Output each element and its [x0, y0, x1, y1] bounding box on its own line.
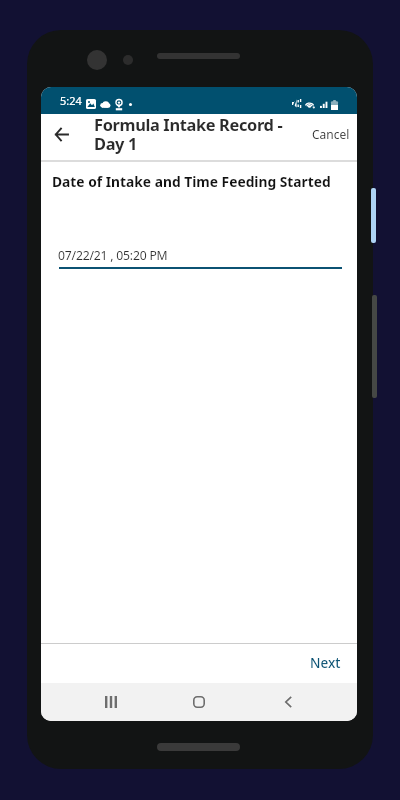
button[interactable]: Cancel: [312, 129, 350, 145]
staticText: Next: [310, 654, 341, 671]
staticText: Cancel: [312, 126, 350, 142]
staticText: 07/22/21 , 05:20 PM: [58, 247, 168, 264]
button[interactable]: Next: [290, 644, 357, 683]
staticText: 5:24: [60, 93, 82, 108]
staticText: Formula Intake Record - Day 1: [94, 113, 284, 155]
button[interactable]: Home: [163, 683, 235, 721]
button[interactable]: Back: [41, 114, 75, 160]
staticText: Date of Intake and Time Feeding Started: [52, 172, 331, 191]
button[interactable]: Recent apps: [75, 683, 147, 721]
button[interactable]: 07/22/21 , 05:20 PM: [59, 247, 342, 269]
button[interactable]: Back: [252, 683, 324, 721]
